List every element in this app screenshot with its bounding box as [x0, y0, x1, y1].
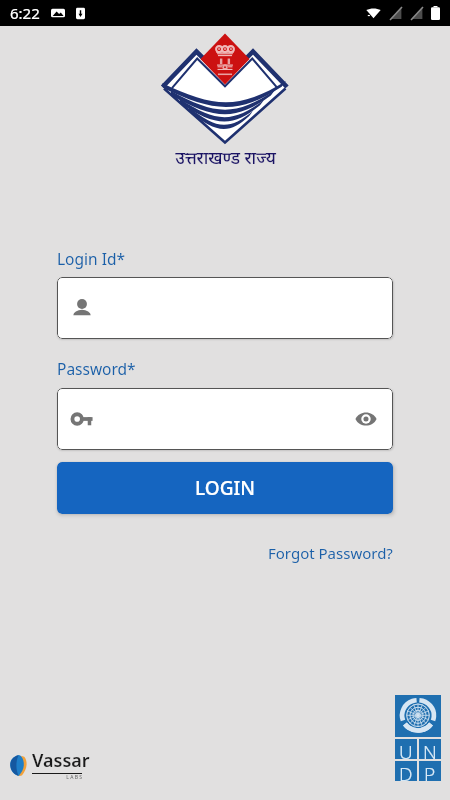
staticText: Vassar: [32, 748, 90, 773]
staticText: D: [399, 761, 413, 781]
staticText: LOGIN: [195, 475, 255, 501]
button[interactable]: LOGIN: [57, 462, 393, 514]
staticText: 6:22: [10, 3, 40, 23]
button[interactable]: [57, 277, 393, 339]
button[interactable]: Vassar Labs: [9, 748, 90, 781]
staticText: P: [424, 761, 436, 781]
button[interactable]: Show password: [57, 388, 393, 450]
staticText: N: [423, 739, 437, 759]
staticText: उत्तराखण्ड राज्य: [175, 146, 276, 169]
button[interactable]: Show password: [353, 406, 379, 432]
staticText: Password*: [57, 358, 136, 379]
staticText: L A B S: [32, 774, 82, 781]
button[interactable]: Forgot Password?: [268, 543, 393, 563]
staticText: U: [399, 739, 413, 759]
staticText: Login Id*: [57, 248, 125, 269]
